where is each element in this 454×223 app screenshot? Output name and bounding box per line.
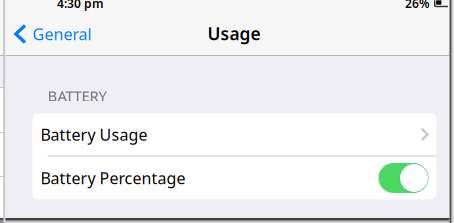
staticText: 4:30 pm bbox=[57, 0, 104, 11]
staticText: Battery Usage bbox=[40, 124, 147, 145]
button[interactable]: General bbox=[5, 13, 101, 55]
staticText: 26% bbox=[405, 0, 430, 11]
staticText: Battery Percentage bbox=[40, 167, 185, 189]
button[interactable]: Battery Percentage bbox=[32, 156, 436, 199]
staticText: Usage bbox=[207, 22, 260, 45]
staticText: General bbox=[32, 23, 91, 45]
staticText: BATTERY bbox=[47, 86, 106, 105]
button[interactable]: Battery Usage bbox=[32, 113, 436, 155]
